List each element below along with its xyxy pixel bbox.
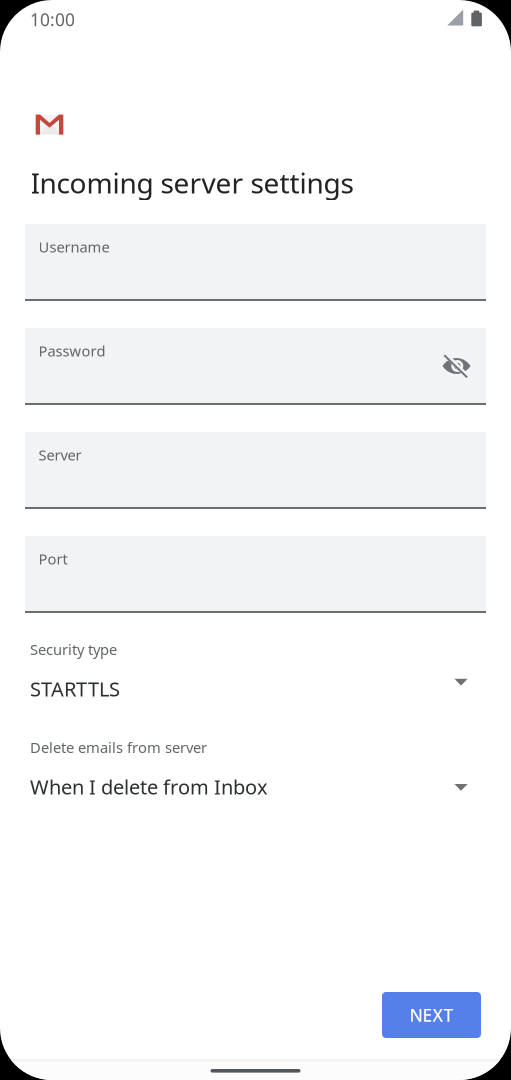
button[interactable]: Server xyxy=(25,432,486,509)
button[interactable]: Show password xyxy=(432,342,480,390)
staticText: Server xyxy=(38,445,81,464)
staticText: 10:00 xyxy=(30,8,75,31)
staticText: When I delete from Inbox xyxy=(30,773,268,800)
button[interactable]: Password xyxy=(25,328,486,405)
staticText: Incoming server settings xyxy=(30,164,353,201)
button[interactable]: Port xyxy=(25,536,486,613)
staticText: Delete emails from server xyxy=(30,737,207,757)
button[interactable]: NEXT xyxy=(382,992,481,1038)
staticText: Username xyxy=(38,237,109,256)
button[interactable]: Security type xyxy=(0,639,511,701)
button[interactable]: Delete emails from server xyxy=(0,737,511,799)
staticText: Security type xyxy=(30,639,117,659)
button[interactable]: Username xyxy=(25,224,486,301)
staticText: STARTTLS xyxy=(30,675,120,702)
staticText: Password xyxy=(38,341,105,360)
staticText: NEXT xyxy=(409,1003,453,1026)
staticText: Port xyxy=(38,549,67,568)
